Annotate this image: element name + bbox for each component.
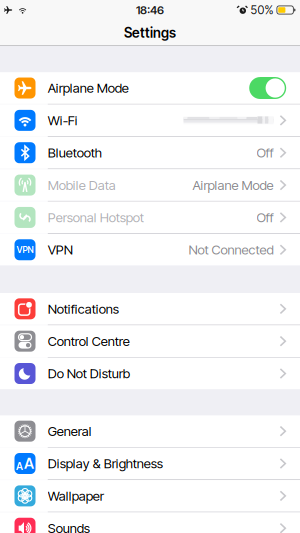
button[interactable]: Bluetooth — [0, 137, 300, 168]
staticText: Mobile Data — [48, 177, 116, 193]
staticText: VPN — [16, 244, 33, 255]
button[interactable]: Mobile Data — [0, 169, 300, 201]
staticText: 18:46 — [136, 3, 164, 17]
button[interactable]: Personal Hotspot — [0, 202, 300, 233]
button[interactable]: General — [0, 415, 300, 447]
button[interactable]: Wi-Fi — [0, 105, 300, 136]
staticText: 50% — [250, 3, 273, 17]
staticText: Wallpaper — [48, 488, 104, 504]
button[interactable]: Airplane Mode — [0, 72, 300, 104]
staticText: Bluetooth — [48, 145, 102, 161]
staticText: Airplane Mode — [48, 80, 129, 96]
button[interactable]: VPN — [0, 234, 300, 265]
staticText: Wi-Fi — [48, 112, 78, 128]
staticText: Airplane Mode — [192, 177, 273, 193]
staticText: Do Not Disturb — [48, 365, 130, 381]
staticText: Sounds — [48, 520, 90, 533]
staticText: Off — [256, 145, 273, 161]
button[interactable]: Notifications — [0, 293, 300, 325]
staticText: Notifications — [48, 301, 119, 317]
button[interactable]: Control Centre — [0, 325, 300, 357]
button[interactable]: Do Not Disturb — [0, 358, 300, 389]
staticText: Settings — [124, 24, 176, 41]
button[interactable]: Sounds — [0, 512, 300, 533]
staticText: General — [48, 423, 92, 439]
button[interactable]: A — [0, 448, 300, 479]
staticText: Personal Hotspot — [48, 209, 144, 225]
staticText: A — [16, 460, 23, 472]
staticText: VPN — [48, 242, 73, 258]
staticText: Off — [256, 209, 273, 225]
staticText: Not Connected — [188, 242, 273, 258]
staticText: Display & Brightness — [48, 455, 163, 471]
button[interactable]: Wallpaper — [0, 480, 300, 512]
staticText: Control Centre — [48, 333, 130, 349]
staticText: A — [24, 455, 34, 472]
